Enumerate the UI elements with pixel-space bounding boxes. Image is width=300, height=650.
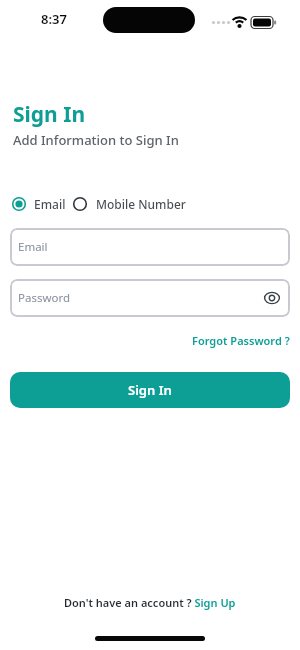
staticText: Don't have an account ? Sign Up bbox=[64, 595, 236, 610]
staticText: Add Information to Sign In bbox=[13, 131, 179, 149]
staticText: Email bbox=[34, 196, 66, 212]
button[interactable]: Don't have an account ? Sign Up bbox=[0, 595, 300, 610]
staticText: Password bbox=[18, 290, 71, 306]
staticText: Mobile Number bbox=[96, 196, 186, 212]
staticText: Email bbox=[18, 239, 48, 255]
button[interactable]: Email bbox=[10, 228, 290, 266]
staticText: Sign In bbox=[128, 381, 172, 399]
staticText: 8:37 bbox=[41, 10, 67, 28]
button[interactable]: Email bbox=[8, 193, 66, 215]
button[interactable]: Sign In bbox=[10, 372, 290, 408]
staticText: Sign In bbox=[13, 100, 86, 129]
button[interactable]: Password bbox=[10, 279, 290, 317]
button[interactable]: Mobile Number bbox=[69, 193, 186, 215]
button[interactable]: Forgot Password ? bbox=[192, 333, 290, 348]
